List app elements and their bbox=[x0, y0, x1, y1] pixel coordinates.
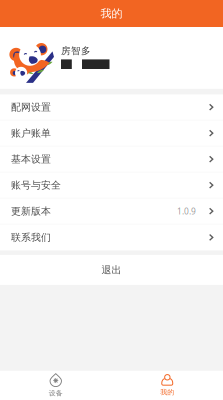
button[interactable]: 联系我们 bbox=[0, 224, 223, 250]
staticText: 我的 bbox=[100, 6, 122, 20]
staticText: 1.0.9 bbox=[177, 205, 196, 217]
staticText: 房智多 bbox=[61, 45, 91, 57]
staticText: 我的 bbox=[160, 388, 174, 397]
button[interactable]: 基本设置 bbox=[0, 146, 223, 172]
button[interactable]: 配网设置 bbox=[0, 94, 223, 120]
button[interactable]: 更新版本 bbox=[0, 198, 223, 224]
staticText: 账户账单 bbox=[11, 127, 51, 139]
button[interactable]: 账户账单 bbox=[0, 120, 223, 146]
staticText: 设备 bbox=[49, 389, 63, 398]
button[interactable]: 设备 bbox=[0, 370, 111, 400]
staticText: 联系我们 bbox=[11, 231, 51, 244]
staticText: 更新版本 bbox=[11, 205, 51, 217]
staticText: 账号与安全 bbox=[11, 179, 61, 191]
staticText: 配网设置 bbox=[11, 101, 51, 113]
button[interactable]: 我的 bbox=[111, 370, 223, 400]
staticText: 退出 bbox=[101, 264, 121, 276]
button[interactable]: 账号与安全 bbox=[0, 172, 223, 198]
button[interactable]: 退出 bbox=[0, 255, 223, 285]
staticText: 基本设置 bbox=[11, 153, 51, 165]
